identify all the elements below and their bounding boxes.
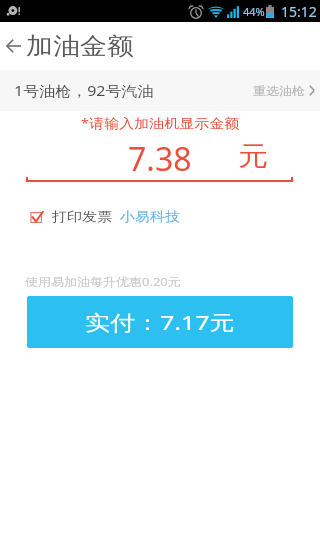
staticText: 重选油枪 [253, 84, 305, 98]
button[interactable]: 小易科技 [120, 208, 180, 227]
staticText: 加油金额 [26, 31, 134, 61]
staticText: 7.38 [128, 137, 192, 177]
staticText: 15:12 [281, 2, 317, 21]
staticText: *请输入加油机显示金额 [0, 114, 320, 132]
staticText: 元 [238, 139, 268, 173]
button[interactable]: Back [0, 22, 26, 70]
staticText: 实付：7.17元 [85, 308, 235, 336]
staticText: 打印发票 [52, 209, 112, 226]
button[interactable]: 1号油枪，92号汽油 [0, 70, 320, 111]
staticText: 使用易加油每升优惠0.20元 [25, 274, 181, 290]
button[interactable]: 打印发票 [30, 208, 112, 227]
staticText: 1号油枪，92号汽油 [14, 81, 154, 101]
staticText: 44% [243, 4, 265, 19]
button[interactable]: 实付：7.17元 [27, 296, 293, 348]
